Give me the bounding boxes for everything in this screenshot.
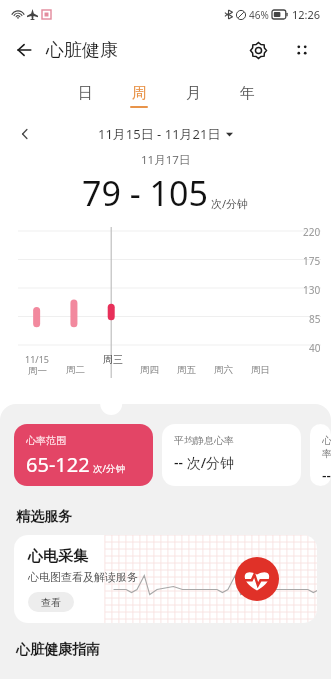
button[interactable]: Previous week [14,124,36,144]
staticText: 220 [303,225,321,239]
staticText: 心电采集 [28,547,88,566]
button[interactable]: 11月15日 - 11月21日 [98,125,233,143]
button[interactable]: Settings [243,35,273,65]
staticText: 130 [303,283,321,297]
staticText: 79 - 105 [82,170,208,216]
staticText: 平均静息心率 [174,434,234,447]
button[interactable]: Back [10,35,40,65]
staticText: 心脏健康指南 [16,641,100,659]
staticText: 周六 [214,364,233,376]
staticText: 85 [309,312,321,326]
staticText: 查看 [41,596,61,609]
button[interactable]: 查看 [28,592,74,612]
staticText: 周三 [103,353,123,366]
button[interactable]: 心电采集 [14,535,317,623]
staticText: 65-122 [26,451,90,478]
staticText: 11/15 [25,353,49,365]
staticText: 心脏健康 [46,39,118,62]
staticText: 46% [249,8,269,22]
staticText: 40 [309,341,321,355]
staticText: -- 次 [322,466,331,485]
staticText: 精选服务 [16,508,72,526]
staticText: 心电图查看及解读服务 [28,570,138,584]
staticText: 心率 [322,434,331,460]
button[interactable]: 年 [220,82,274,110]
button[interactable]: 日 [58,82,112,110]
staticText: 周四 [140,364,159,376]
staticText: 11月17日 [141,152,191,168]
staticText: 次/分钟 [211,196,249,211]
staticText: -- 次/分钟 [174,453,235,472]
staticText: 11月15日 - 11月21日 [98,125,221,143]
button[interactable]: 平均静息心率 [162,424,301,486]
staticText: 日 [78,84,93,103]
staticText: 周五 [177,364,196,376]
staticText: 175 [303,254,321,268]
button[interactable]: 心率 [310,424,331,486]
staticText: 月 [186,84,201,103]
staticText: 周二 [66,364,85,376]
staticText: 次/分钟 [93,462,126,475]
staticText: 12:26 [292,7,321,22]
button[interactable]: 心率范围 [14,424,153,486]
staticText: 周一 [28,365,47,377]
staticText: 周 [132,84,147,103]
staticText: 心率范围 [26,434,66,447]
button[interactable]: 周 [112,82,166,110]
button[interactable]: 月 [166,82,220,110]
button[interactable]: More options [287,35,317,65]
staticText: 周日 [251,364,270,376]
staticText: 年 [240,84,255,103]
